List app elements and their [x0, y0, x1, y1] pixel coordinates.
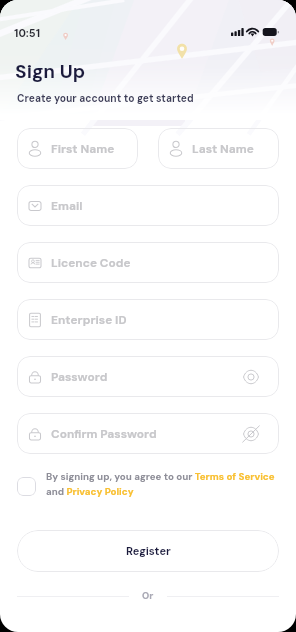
button[interactable]: Licence Code [17, 242, 279, 283]
staticText: Sign Up [15, 59, 86, 84]
staticText: Licence Code [51, 255, 131, 270]
staticText: First Name [51, 141, 115, 156]
other: Signal, wifi and battery status [231, 28, 280, 37]
button[interactable]: Password [17, 356, 279, 397]
button[interactable]: Register [17, 530, 279, 572]
staticText: Password [51, 369, 108, 384]
button[interactable]: Toggle password visibility [243, 369, 259, 385]
staticText: Create your account to get started [17, 92, 194, 105]
staticText: Last Name [192, 141, 254, 156]
staticText: By signing up, you agree to our Terms of… [46, 470, 286, 498]
staticText: 10:51 [14, 26, 41, 40]
button[interactable]: Confirm Password [17, 413, 279, 454]
staticText: Confirm Password [51, 426, 157, 441]
button[interactable]: Email [17, 185, 279, 226]
button[interactable]: Last Name [158, 128, 279, 169]
button[interactable]: First Name [17, 128, 138, 169]
button[interactable]: Enterprise ID [17, 299, 279, 340]
button[interactable]: Accept terms and conditions [17, 477, 36, 496]
staticText: Email [51, 198, 83, 213]
button[interactable]: Toggle password visibility [243, 426, 259, 442]
staticText: Enterprise ID [51, 312, 127, 327]
staticText: Register [126, 544, 171, 558]
staticText: Or [142, 590, 154, 602]
